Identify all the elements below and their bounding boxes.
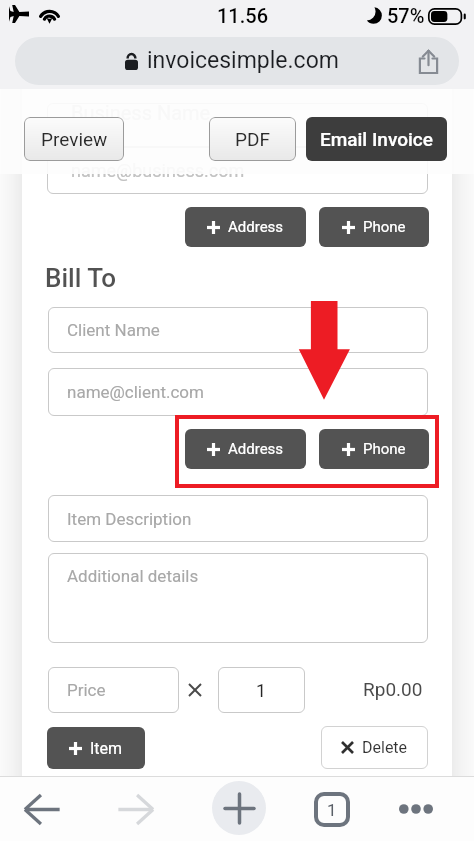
- staticText: 11.56: [217, 4, 269, 27]
- button[interactable]: Item Description: [48, 495, 428, 542]
- button[interactable]: invoicesimple.com: [15, 37, 459, 85]
- button[interactable]: Delete: [321, 726, 428, 769]
- button[interactable]: Preview: [24, 117, 124, 161]
- button[interactable]: Phone: [319, 207, 429, 247]
- staticText: Email Invoice: [320, 128, 433, 150]
- button[interactable]: name@client.com: [48, 368, 428, 416]
- staticText: name@business.com: [71, 160, 245, 181]
- button[interactable]: Back: [13, 785, 71, 833]
- button[interactable]: Additional details: [48, 553, 428, 643]
- staticText: Bill To: [45, 263, 116, 293]
- staticText: Price: [67, 680, 106, 700]
- button[interactable]: Address: [185, 207, 306, 247]
- staticText: Phone: [363, 440, 406, 458]
- staticText: 57%: [387, 4, 425, 27]
- staticText: Client Name: [67, 320, 160, 340]
- button[interactable]: More: [387, 785, 445, 833]
- staticText: invoicesimple.com: [147, 47, 339, 74]
- staticText: PDF: [235, 128, 270, 150]
- staticText: Rp0.00: [363, 678, 423, 700]
- staticText: Business Name: [71, 101, 211, 124]
- staticText: Additional details: [67, 566, 199, 586]
- button[interactable]: New tab: [212, 781, 266, 835]
- button[interactable]: Share: [409, 42, 447, 80]
- staticText: Phone: [363, 218, 406, 236]
- button[interactable]: PDF: [209, 117, 296, 161]
- staticText: Address: [228, 440, 284, 458]
- button[interactable]: Phone: [319, 429, 429, 469]
- staticText: Preview: [41, 128, 108, 150]
- staticText: 1: [327, 800, 337, 820]
- staticText: Address: [228, 218, 284, 236]
- staticText: Item: [90, 739, 123, 758]
- staticText: 1: [256, 680, 267, 701]
- button[interactable]: Tabs: [303, 784, 361, 834]
- staticText: Delete: [362, 738, 408, 757]
- staticText: name@client.com: [67, 382, 204, 402]
- button[interactable]: Email Invoice: [306, 117, 447, 161]
- button[interactable]: 1: [218, 667, 305, 713]
- button[interactable]: Forward: [107, 785, 165, 833]
- button[interactable]: Address: [185, 429, 306, 469]
- button[interactable]: Item: [47, 727, 145, 769]
- button[interactable]: Client Name: [48, 307, 428, 353]
- button[interactable]: Price: [48, 667, 179, 713]
- staticText: Item Description: [67, 509, 192, 529]
